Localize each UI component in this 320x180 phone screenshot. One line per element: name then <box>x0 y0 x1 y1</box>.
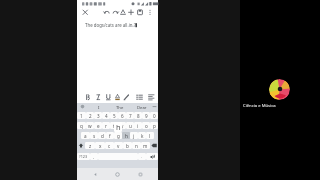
button[interactable]: 4 <box>102 112 110 119</box>
button[interactable]: 1 <box>77 112 86 119</box>
button[interactable]: 7 <box>126 112 134 119</box>
button[interactable]: 2 <box>86 112 94 119</box>
staticText: r <box>105 123 107 129</box>
button[interactable]: m <box>141 142 150 149</box>
button[interactable]: u <box>126 122 134 129</box>
staticText: 3 <box>97 113 100 119</box>
staticText: m <box>143 143 148 149</box>
button[interactable]: k <box>138 132 146 139</box>
staticText: ?123 <box>79 154 88 159</box>
button[interactable]: 3 <box>94 112 102 119</box>
staticText: c <box>108 143 111 149</box>
button[interactable]: Recents <box>136 170 145 179</box>
button[interactable]: y <box>118 122 126 129</box>
staticText: 4 <box>105 113 108 119</box>
button[interactable]: f <box>106 132 114 139</box>
staticText: z <box>89 143 92 149</box>
button[interactable]: c <box>105 142 114 149</box>
button[interactable]: h <box>122 132 130 139</box>
button[interactable]: . <box>138 153 146 160</box>
button[interactable]: j <box>130 132 138 139</box>
button[interactable]: l <box>146 132 154 139</box>
button[interactable]: s <box>90 132 98 139</box>
staticText: q <box>80 123 83 129</box>
button[interactable]: p <box>150 122 158 129</box>
staticText: a <box>84 133 87 139</box>
button[interactable]: 6 <box>118 112 126 119</box>
button[interactable]: Home <box>113 170 122 179</box>
button[interactable]: i <box>134 122 142 129</box>
staticText: n <box>135 143 138 149</box>
button[interactable]: o <box>142 122 150 129</box>
staticText: 1 <box>80 113 83 119</box>
staticText: Dear <box>137 105 147 111</box>
button[interactable]: Back <box>91 170 100 179</box>
button[interactable]: x <box>95 142 105 149</box>
button[interactable]: Enter <box>146 153 158 160</box>
staticText: . <box>141 154 143 159</box>
staticText: o <box>145 123 148 129</box>
button[interactable]: v <box>114 142 123 149</box>
staticText: 0 <box>153 113 156 119</box>
staticText: 2 <box>89 113 92 119</box>
button[interactable]: 8 <box>134 112 142 119</box>
staticText: i <box>137 123 139 129</box>
staticText: h <box>125 133 128 139</box>
staticText: l <box>149 133 151 139</box>
staticText: s <box>93 133 96 139</box>
staticText: j <box>133 133 135 139</box>
button[interactable]: b <box>123 142 132 149</box>
button[interactable]: 5 <box>110 112 118 119</box>
staticText: w <box>88 123 92 129</box>
staticText: Ciência e Música <box>243 103 276 109</box>
staticText: The dogs/cats are all in ? <box>85 22 136 28</box>
staticText: f <box>109 133 111 139</box>
button[interactable]: g <box>114 132 122 139</box>
button[interactable]: q <box>77 122 86 129</box>
button[interactable]: n <box>132 142 141 149</box>
button[interactable]: Backspace <box>150 142 158 149</box>
staticText: d <box>101 133 104 139</box>
button[interactable]: w <box>86 122 94 129</box>
staticText: t <box>113 123 115 129</box>
staticText: 9 <box>145 113 148 119</box>
staticText: x <box>99 143 102 149</box>
button[interactable]: Shift <box>77 142 85 149</box>
staticText: h <box>116 122 121 132</box>
button[interactable]: d <box>98 132 106 139</box>
button[interactable]: , <box>90 153 98 160</box>
button[interactable]: z <box>85 142 95 149</box>
staticText: v <box>117 143 120 149</box>
button[interactable]: ?123 <box>77 153 90 160</box>
staticText: p <box>153 123 156 129</box>
button[interactable]: 9 <box>142 112 150 119</box>
button[interactable]: r <box>102 122 110 129</box>
staticText: e <box>97 123 100 129</box>
staticText: y <box>121 123 124 129</box>
staticText: g <box>117 133 120 139</box>
button[interactable]: a <box>81 132 90 139</box>
staticText: 5 <box>113 113 116 119</box>
staticText: k <box>141 133 144 139</box>
button[interactable]: e <box>94 122 102 129</box>
staticText: 6 <box>121 113 124 119</box>
staticText: 8 <box>137 113 140 119</box>
staticText: The <box>116 105 124 111</box>
staticText: 7 <box>129 113 132 119</box>
button[interactable]: t <box>110 122 118 129</box>
button[interactable]: 0 <box>150 112 158 119</box>
staticText: I <box>98 105 100 111</box>
staticText: u <box>129 123 132 129</box>
staticText: b <box>126 143 129 149</box>
staticText: , <box>93 154 95 159</box>
